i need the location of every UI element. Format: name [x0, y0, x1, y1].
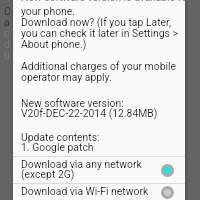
staticText: V20f-DEC-22-2014 (12.84MB)	[21, 107, 158, 119]
staticText: operator may apply.	[21, 71, 112, 83]
staticText: Update contents:	[21, 131, 100, 143]
staticText: Additional charges of your mobile	[21, 60, 177, 72]
staticText: Download via any network	[21, 158, 142, 170]
staticText: c	[4, 27, 10, 39]
button[interactable]	[13, 184, 185, 200]
staticText: a	[4, 16, 10, 28]
staticText: Download now? (If you tap Later,	[21, 16, 171, 28]
staticText: C	[4, 5, 11, 17]
staticText: New software version:	[21, 97, 124, 109]
staticText: About phone.)	[21, 38, 87, 50]
staticText: 1. Google patch	[21, 141, 94, 153]
staticText: u	[4, 49, 10, 61]
staticText: you can check it later in Settings >	[21, 27, 178, 39]
staticText: d	[4, 38, 10, 50]
button[interactable]	[13, 157, 185, 184]
staticText: (except 2G)	[21, 168, 75, 180]
staticText: Download via Wi-Fi network	[21, 185, 149, 197]
staticText: your phone.	[21, 5, 76, 17]
staticText: New software version is available for	[21, 0, 191, 3]
